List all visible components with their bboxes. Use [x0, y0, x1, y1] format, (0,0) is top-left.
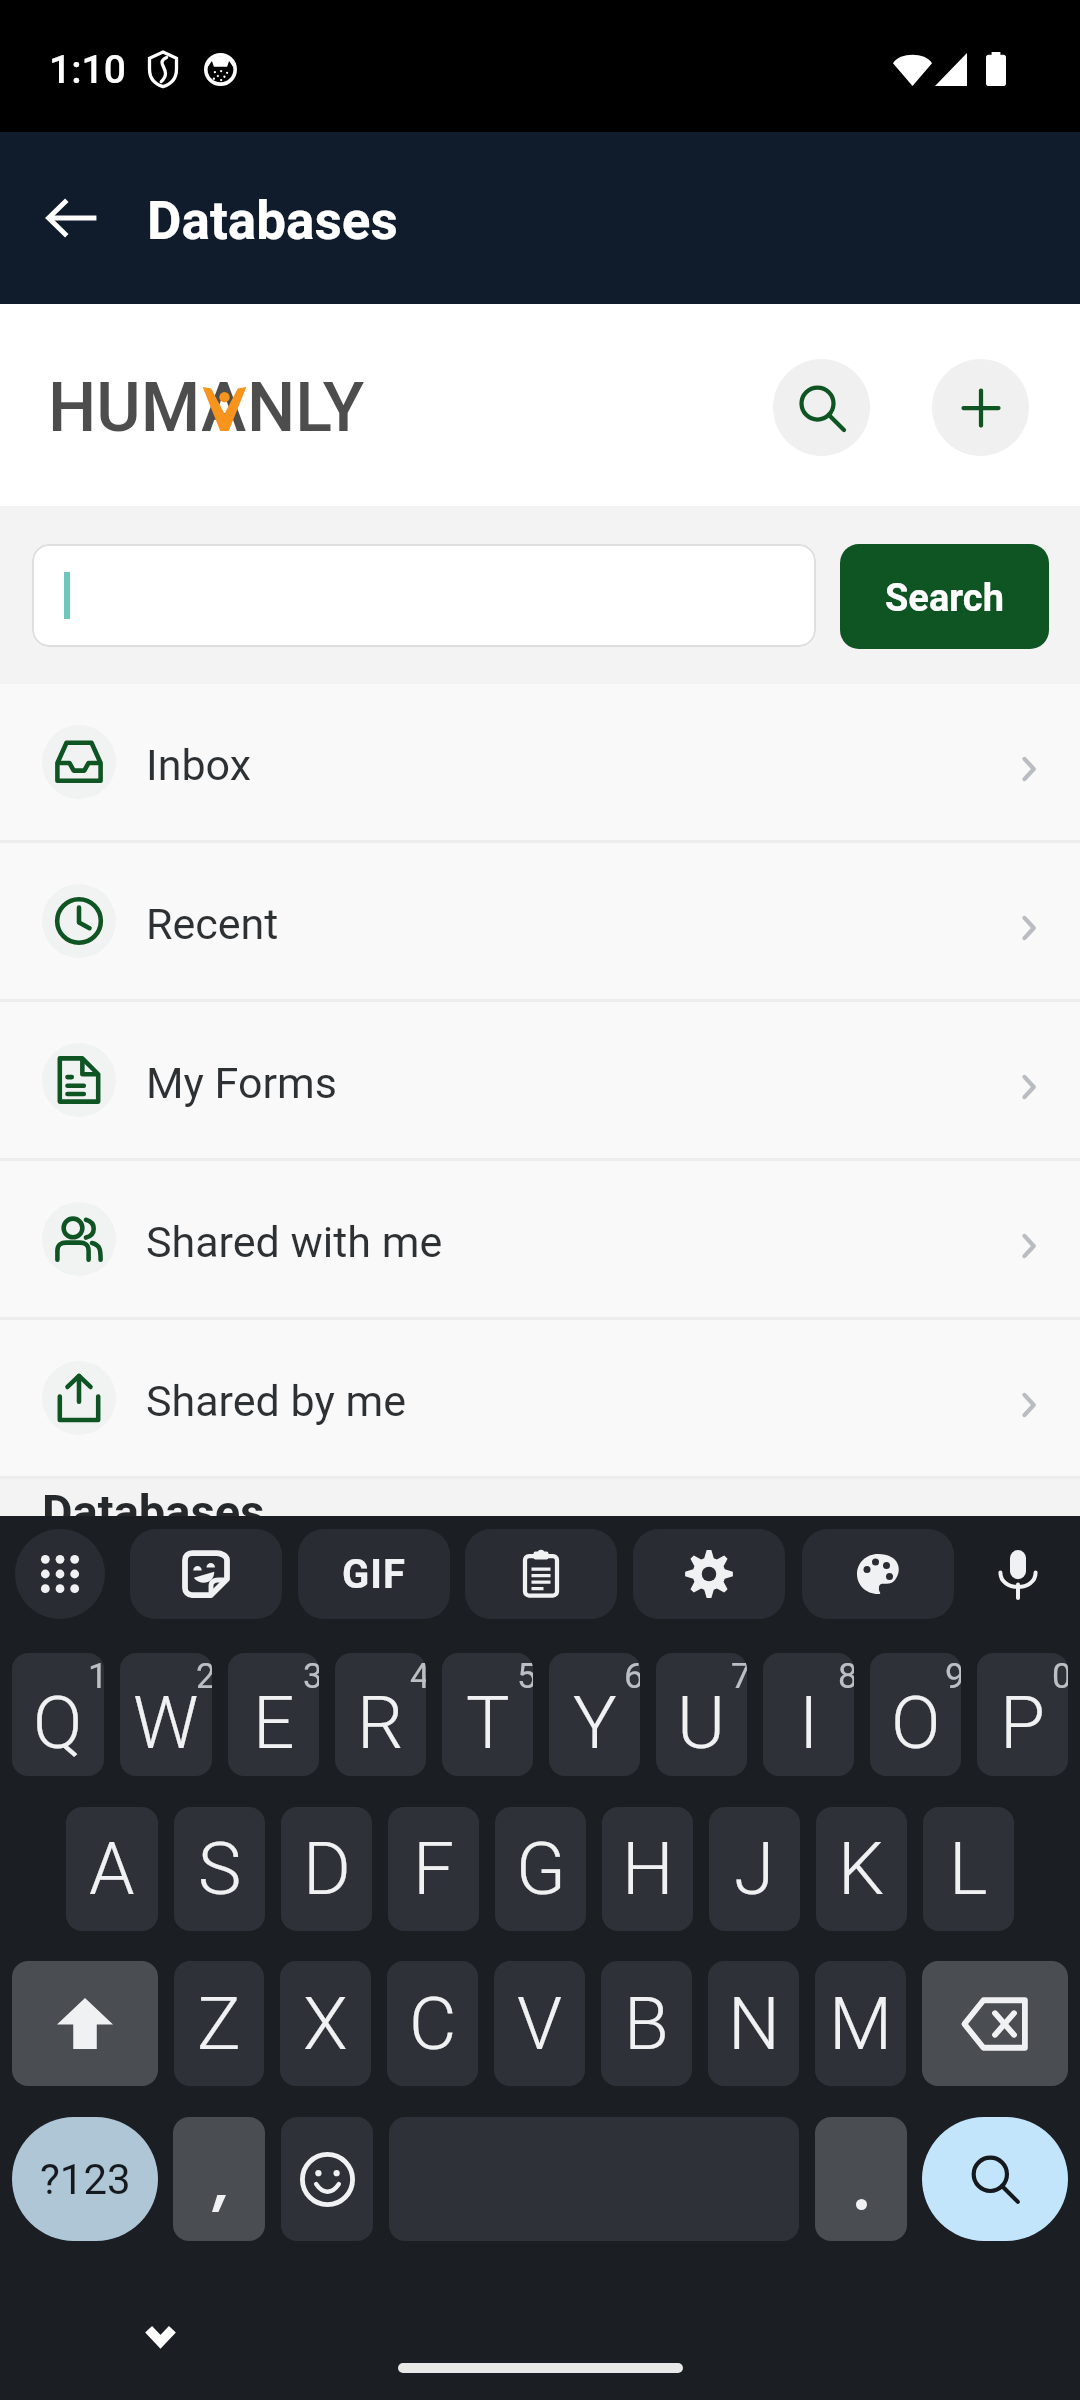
button[interactable]: My Forms	[0, 1002, 1080, 1158]
button[interactable]: J	[709, 1807, 800, 1931]
staticText: Databases	[147, 190, 398, 252]
staticText: Y	[573, 1680, 617, 1766]
button[interactable]: Clipboard	[465, 1529, 617, 1619]
button[interactable]: Search	[922, 2117, 1068, 2241]
staticText: Databases	[42, 1484, 265, 1521]
button[interactable]: N	[708, 1961, 799, 2086]
staticText: 9	[945, 1656, 961, 1697]
button[interactable]: Voice input	[956, 1529, 1080, 1619]
button[interactable]: Stickers	[130, 1529, 282, 1619]
staticText: Shared by me	[146, 1376, 406, 1426]
button[interactable]: Open menu	[15, 1529, 105, 1619]
staticText: E	[253, 1680, 295, 1766]
button[interactable]: R	[335, 1653, 426, 1776]
button[interactable]: Hide keyboard	[128, 2309, 192, 2361]
staticText: NLY	[247, 368, 365, 448]
button[interactable]: Settings	[633, 1529, 785, 1619]
staticText: Search	[885, 576, 1004, 621]
staticText: 6	[624, 1656, 640, 1697]
button[interactable]: ?123	[12, 2117, 158, 2241]
staticText: K	[838, 1826, 885, 1912]
button[interactable]: Search	[840, 544, 1049, 649]
button[interactable]: P	[977, 1653, 1068, 1776]
staticText: 1:10	[49, 47, 126, 93]
staticText: A	[201, 368, 247, 448]
button[interactable]: B	[601, 1961, 692, 2086]
button[interactable]: Themes	[802, 1529, 954, 1619]
button[interactable]	[32, 544, 816, 647]
button[interactable]: T	[442, 1653, 533, 1776]
staticText: N	[728, 1981, 780, 2067]
button[interactable]: Shared with me	[0, 1161, 1080, 1317]
button[interactable]: V	[494, 1961, 585, 2086]
staticText: 5	[517, 1656, 533, 1697]
button[interactable]: Inbox	[0, 684, 1080, 840]
button[interactable]: X	[280, 1961, 371, 2086]
staticText: 7	[731, 1656, 747, 1697]
staticText: P	[1000, 1680, 1045, 1766]
button[interactable]: H	[602, 1807, 693, 1931]
button[interactable]: W	[120, 1653, 212, 1776]
button[interactable]: E	[228, 1653, 319, 1776]
button[interactable]: Shift	[12, 1961, 158, 2086]
staticText: A	[89, 1826, 135, 1912]
button[interactable]: Period	[815, 2117, 907, 2241]
button[interactable]: D	[281, 1807, 372, 1931]
button[interactable]: A	[66, 1807, 158, 1931]
staticText: S	[198, 1826, 242, 1912]
staticText: T	[466, 1680, 510, 1766]
staticText: 4	[410, 1656, 426, 1697]
button[interactable]: Y	[549, 1653, 640, 1776]
staticText: R	[357, 1680, 404, 1766]
staticText: GIF	[342, 1551, 406, 1598]
button[interactable]: O	[870, 1653, 961, 1776]
button[interactable]: Recent	[0, 843, 1080, 999]
staticText: Inbox	[146, 740, 252, 790]
staticText: 2	[196, 1656, 212, 1697]
button[interactable]: GIF	[298, 1529, 450, 1619]
staticText: My Forms	[146, 1058, 337, 1108]
button[interactable]: Emoji	[281, 2117, 373, 2241]
staticText: HUM	[48, 368, 201, 448]
button[interactable]: Z	[174, 1961, 264, 2086]
staticText: Q	[33, 1680, 83, 1766]
staticText: 0	[1052, 1656, 1068, 1697]
button[interactable]: K	[816, 1807, 907, 1931]
staticText: M	[829, 1981, 893, 2067]
button[interactable]: G	[495, 1807, 586, 1931]
staticText: 1	[88, 1656, 104, 1697]
staticText: G	[516, 1826, 566, 1912]
button[interactable]: Comma	[173, 2117, 265, 2241]
button[interactable]: C	[387, 1961, 478, 2086]
staticText: U	[677, 1680, 726, 1766]
button[interactable]: Back	[24, 170, 120, 266]
staticText: Shared with me	[146, 1217, 443, 1267]
button[interactable]: I	[763, 1653, 854, 1776]
button[interactable]: Backspace	[922, 1961, 1068, 2086]
button[interactable]: Search	[773, 359, 870, 456]
staticText: O	[891, 1680, 941, 1766]
staticText: F	[413, 1826, 455, 1912]
staticText: D	[303, 1826, 351, 1912]
staticText: ?123	[40, 2155, 131, 2204]
staticText: 3	[303, 1656, 319, 1697]
staticText: V	[517, 1981, 563, 2067]
staticText: X	[303, 1981, 348, 2067]
staticText: L	[949, 1826, 988, 1912]
button[interactable]: Q	[12, 1653, 104, 1776]
staticText: J	[734, 1826, 775, 1912]
staticText: Z	[197, 1981, 241, 2067]
button[interactable]: U	[656, 1653, 747, 1776]
staticText: W	[133, 1680, 199, 1766]
button[interactable]: Add new	[932, 359, 1029, 456]
staticText: C	[409, 1981, 457, 2067]
button[interactable]: M	[815, 1961, 906, 2086]
staticText: I	[799, 1680, 819, 1766]
staticText: B	[624, 1981, 669, 2067]
button[interactable]: Shared by me	[0, 1320, 1080, 1476]
staticText: H	[622, 1826, 674, 1912]
button[interactable]: L	[923, 1807, 1014, 1931]
button[interactable]: S	[174, 1807, 265, 1931]
button[interactable]: F	[388, 1807, 479, 1931]
